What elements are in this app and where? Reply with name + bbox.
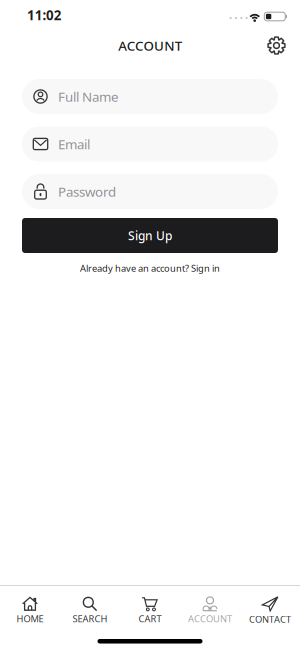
staticText: Full Name (58, 88, 119, 105)
button[interactable]: SEARCH (60, 596, 120, 625)
button[interactable]: Email (22, 126, 278, 161)
staticText: SEARCH (72, 612, 107, 625)
staticText: CART (138, 612, 161, 625)
staticText: ACCOUNT (118, 37, 182, 54)
staticText: HOME (16, 612, 43, 625)
button[interactable]: Already have an account? Sign in (80, 253, 220, 274)
button[interactable]: HOME (0, 596, 60, 625)
staticText: ACCOUNT (188, 612, 232, 625)
button[interactable]: Sign Up (22, 218, 278, 253)
staticText: Email (58, 135, 90, 153)
button[interactable]: ACCOUNT (180, 596, 240, 625)
staticText: Already have an account? Sign in (80, 262, 220, 274)
button[interactable]: Password (22, 174, 278, 209)
button[interactable]: CONTACT (240, 596, 300, 625)
staticText: CONTACT (249, 613, 291, 625)
button[interactable]: Full Name (22, 79, 278, 114)
staticText: Password (58, 183, 116, 200)
button[interactable] (267, 36, 300, 55)
staticText: Sign Up (128, 227, 172, 243)
staticText: 11:02 (27, 6, 62, 24)
button[interactable]: CART (120, 596, 180, 625)
